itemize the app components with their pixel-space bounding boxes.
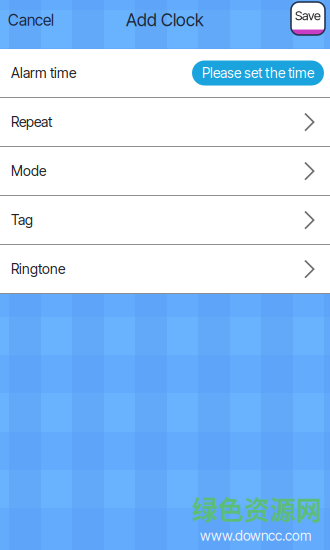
staticText: Add Clock: [126, 9, 204, 30]
staticText: Please set the time: [202, 64, 314, 81]
staticText: Save: [295, 8, 321, 23]
staticText: 绿色资源网: [192, 490, 322, 527]
button[interactable]: Tag: [0, 196, 330, 245]
staticText: Mode: [11, 162, 46, 179]
button[interactable]: Repeat: [0, 98, 330, 147]
staticText: Repeat: [11, 113, 52, 130]
button[interactable]: Save: [291, 0, 330, 35]
staticText: Ringtone: [11, 260, 65, 277]
button[interactable]: Ringtone: [0, 245, 330, 294]
button[interactable]: Mode: [0, 147, 330, 196]
staticText: Alarm time: [11, 64, 76, 81]
staticText: Cancel: [8, 11, 54, 29]
staticText: www.downcc.com: [200, 527, 311, 544]
staticText: Tag: [11, 211, 33, 228]
button[interactable]: Cancel: [0, 0, 62, 40]
button[interactable]: Please set the time: [192, 60, 324, 85]
